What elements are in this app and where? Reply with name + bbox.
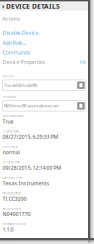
staticText: SERIALNUMBER bbox=[2, 207, 21, 210]
staticText: HOSTNAME bbox=[2, 95, 15, 98]
staticText: LOCATION bbox=[2, 238, 15, 241]
button[interactable]: Edit bbox=[80, 59, 86, 65]
staticText: CREATEDTIME bbox=[2, 130, 18, 133]
staticText: MODELNUMBER bbox=[2, 191, 21, 195]
staticText: 7cecde55b1ce4e9fb bbox=[4, 82, 37, 88]
staticText: Commands bbox=[2, 49, 30, 56]
staticText: Disable Device bbox=[2, 29, 38, 36]
staticText: DEVICEID bbox=[2, 74, 14, 78]
staticText: Actions bbox=[2, 15, 20, 22]
button[interactable]: Copy device ID bbox=[77, 81, 85, 89]
staticText: › DEVICE DETAILS bbox=[2, 2, 60, 11]
staticText: RMDemo.RD.azure-devices.net bbox=[4, 103, 58, 108]
staticText: True bbox=[2, 118, 13, 125]
staticText: N04001770 bbox=[2, 210, 30, 218]
staticText: HARDWARESTATE bbox=[2, 114, 23, 118]
staticText: DEVICESTATE bbox=[2, 145, 17, 148]
staticText: 09/28/2015, 12:14:00 PM bbox=[2, 164, 61, 171]
staticText: TI CC3200 bbox=[2, 195, 26, 202]
staticText: Device Properties bbox=[2, 58, 45, 66]
staticText: 1.1.0 bbox=[2, 226, 13, 233]
staticText: Texas Instruments bbox=[2, 180, 49, 187]
staticText: normal bbox=[2, 149, 19, 156]
button[interactable]: Add Rule... bbox=[2, 38, 86, 48]
staticText: 08/27/2015, 6:29:33 PM bbox=[2, 133, 58, 140]
button[interactable]: Commands bbox=[2, 48, 86, 57]
staticText: Edit bbox=[80, 59, 86, 65]
staticText: UPDATEDTIME bbox=[2, 160, 19, 164]
button[interactable]: Disable Device bbox=[2, 28, 86, 38]
staticText: MANUFACTURER bbox=[2, 176, 23, 179]
staticText: FIRMWAREVERSION bbox=[2, 222, 26, 226]
staticText: Add Rule... bbox=[2, 39, 25, 46]
button[interactable]: Copy hostname bbox=[77, 102, 85, 109]
